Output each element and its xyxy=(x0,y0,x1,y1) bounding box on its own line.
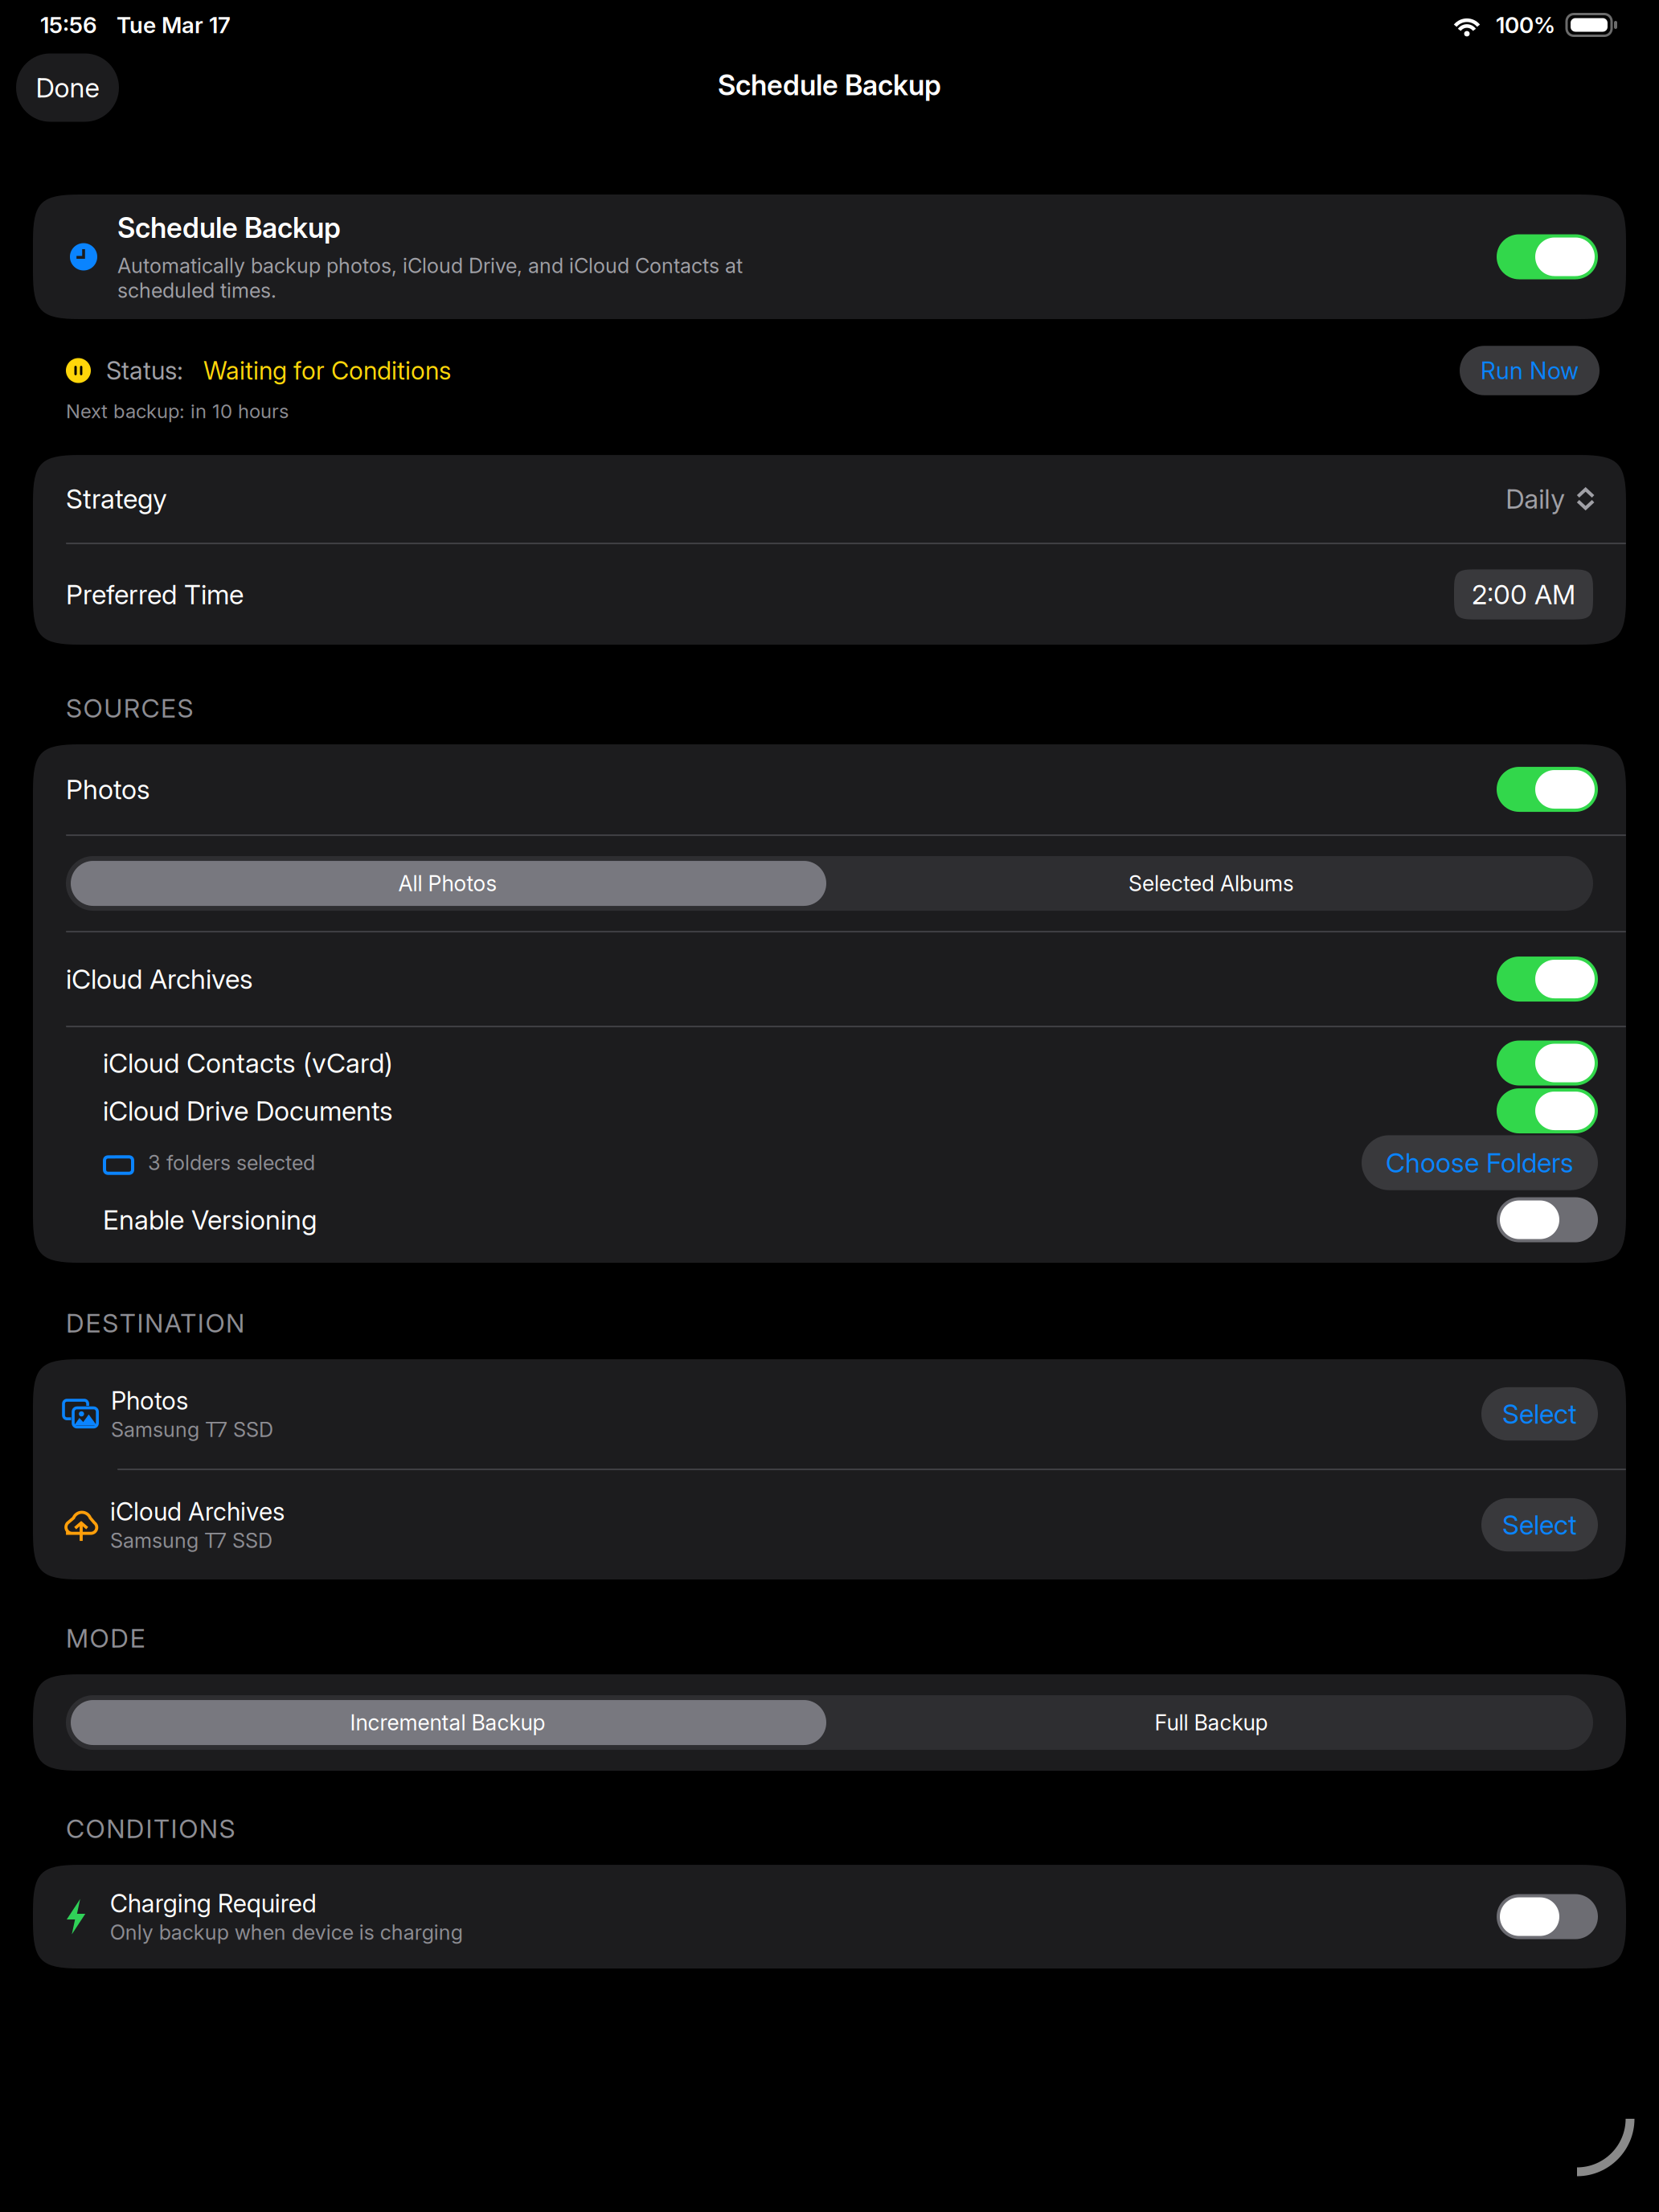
button[interactable]: Select xyxy=(1481,1498,1598,1551)
staticText: Schedule Backup xyxy=(718,68,941,102)
staticText: Status: xyxy=(106,356,183,385)
staticText: Run Now xyxy=(1481,356,1579,385)
staticText: iCloud Archives xyxy=(66,963,253,995)
staticText: Preferred Time xyxy=(66,578,244,611)
staticText: Select xyxy=(1502,1398,1577,1430)
staticText: 15:56 xyxy=(40,11,97,39)
staticText: Enable Versioning xyxy=(103,1204,317,1236)
staticText: Next backup: in 10 hours xyxy=(66,399,289,423)
staticText: iCloud Contacts (vCard) xyxy=(103,1047,393,1079)
staticText: Select xyxy=(1502,1509,1577,1541)
staticText: Samsung T7 SSD xyxy=(111,1417,273,1442)
staticText: Done xyxy=(36,71,99,104)
staticText: MODE xyxy=(66,1623,145,1654)
staticText: Daily xyxy=(1506,483,1565,515)
staticText: Full Backup xyxy=(1155,1710,1268,1736)
staticText: iCloud Archives xyxy=(110,1497,285,1527)
staticText: Photos xyxy=(66,773,150,806)
staticText: Photos xyxy=(111,1386,188,1416)
button[interactable]: Choose Folders xyxy=(1362,1135,1598,1190)
staticText: Only backup when device is charging xyxy=(110,1920,463,1945)
staticText: iCloud Drive Documents xyxy=(103,1095,393,1127)
staticText: Automatically backup photos, iCloud Driv… xyxy=(117,253,743,303)
staticText: Choose Folders xyxy=(1386,1147,1574,1179)
button[interactable]: 2:00 AM xyxy=(1454,569,1593,619)
staticText: Charging Required xyxy=(110,1889,316,1918)
button[interactable]: Run Now xyxy=(1460,346,1600,395)
staticText: 3 folders selected xyxy=(148,1150,315,1175)
staticText: Incremental Backup xyxy=(350,1710,545,1736)
staticText: Strategy xyxy=(66,483,167,515)
staticText: SOURCES xyxy=(66,693,193,724)
staticText: All Photos xyxy=(398,870,497,896)
button[interactable]: Select xyxy=(1481,1387,1598,1441)
staticText: Selected Albums xyxy=(1129,870,1294,896)
staticText: Samsung T7 SSD xyxy=(110,1528,272,1553)
staticText: Waiting for Conditions xyxy=(203,356,451,385)
button[interactable]: Strategy xyxy=(33,455,1626,543)
staticText: Schedule Backup xyxy=(117,211,341,245)
staticText: 2:00 AM xyxy=(1472,578,1575,611)
staticText: 100% xyxy=(1496,11,1555,39)
staticText: DESTINATION xyxy=(66,1308,244,1339)
staticText: Tue Mar 17 xyxy=(117,11,231,39)
button[interactable]: Done xyxy=(16,53,119,122)
staticText: CONDITIONS xyxy=(66,1813,235,1844)
